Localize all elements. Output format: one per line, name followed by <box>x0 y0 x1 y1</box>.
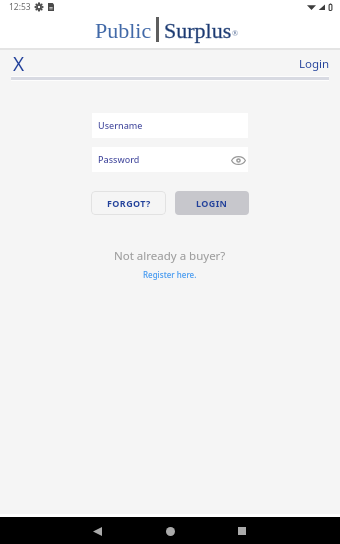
button[interactable]: LOGIN <box>175 191 249 215</box>
staticText: Not already a buyer? <box>114 248 226 264</box>
staticText: Login <box>299 56 330 72</box>
button[interactable]: Show password <box>229 151 247 169</box>
button[interactable]: Username <box>92 113 248 138</box>
button[interactable]: Close <box>7 51 31 75</box>
button[interactable]: FORGOT? <box>91 191 166 215</box>
staticText: Public <box>95 18 152 42</box>
button[interactable]: Login <box>299 56 330 72</box>
staticText: Register here. <box>143 269 197 280</box>
staticText: LOGIN <box>196 197 228 209</box>
staticText: X <box>13 51 25 75</box>
button[interactable]: Register here. <box>143 269 197 280</box>
staticText: ® <box>232 29 239 38</box>
staticText: Username <box>98 119 143 131</box>
button[interactable]: Recents <box>230 519 254 543</box>
button[interactable]: Back <box>85 519 109 543</box>
staticText: Surplus <box>164 18 232 42</box>
staticText: Password <box>98 153 140 165</box>
button[interactable]: Home <box>158 519 182 543</box>
staticText: 12:53 <box>9 1 31 13</box>
staticText: FORGOT? <box>107 197 151 209</box>
staticText: Surplus <box>164 18 232 42</box>
button[interactable]: Password <box>92 147 248 172</box>
